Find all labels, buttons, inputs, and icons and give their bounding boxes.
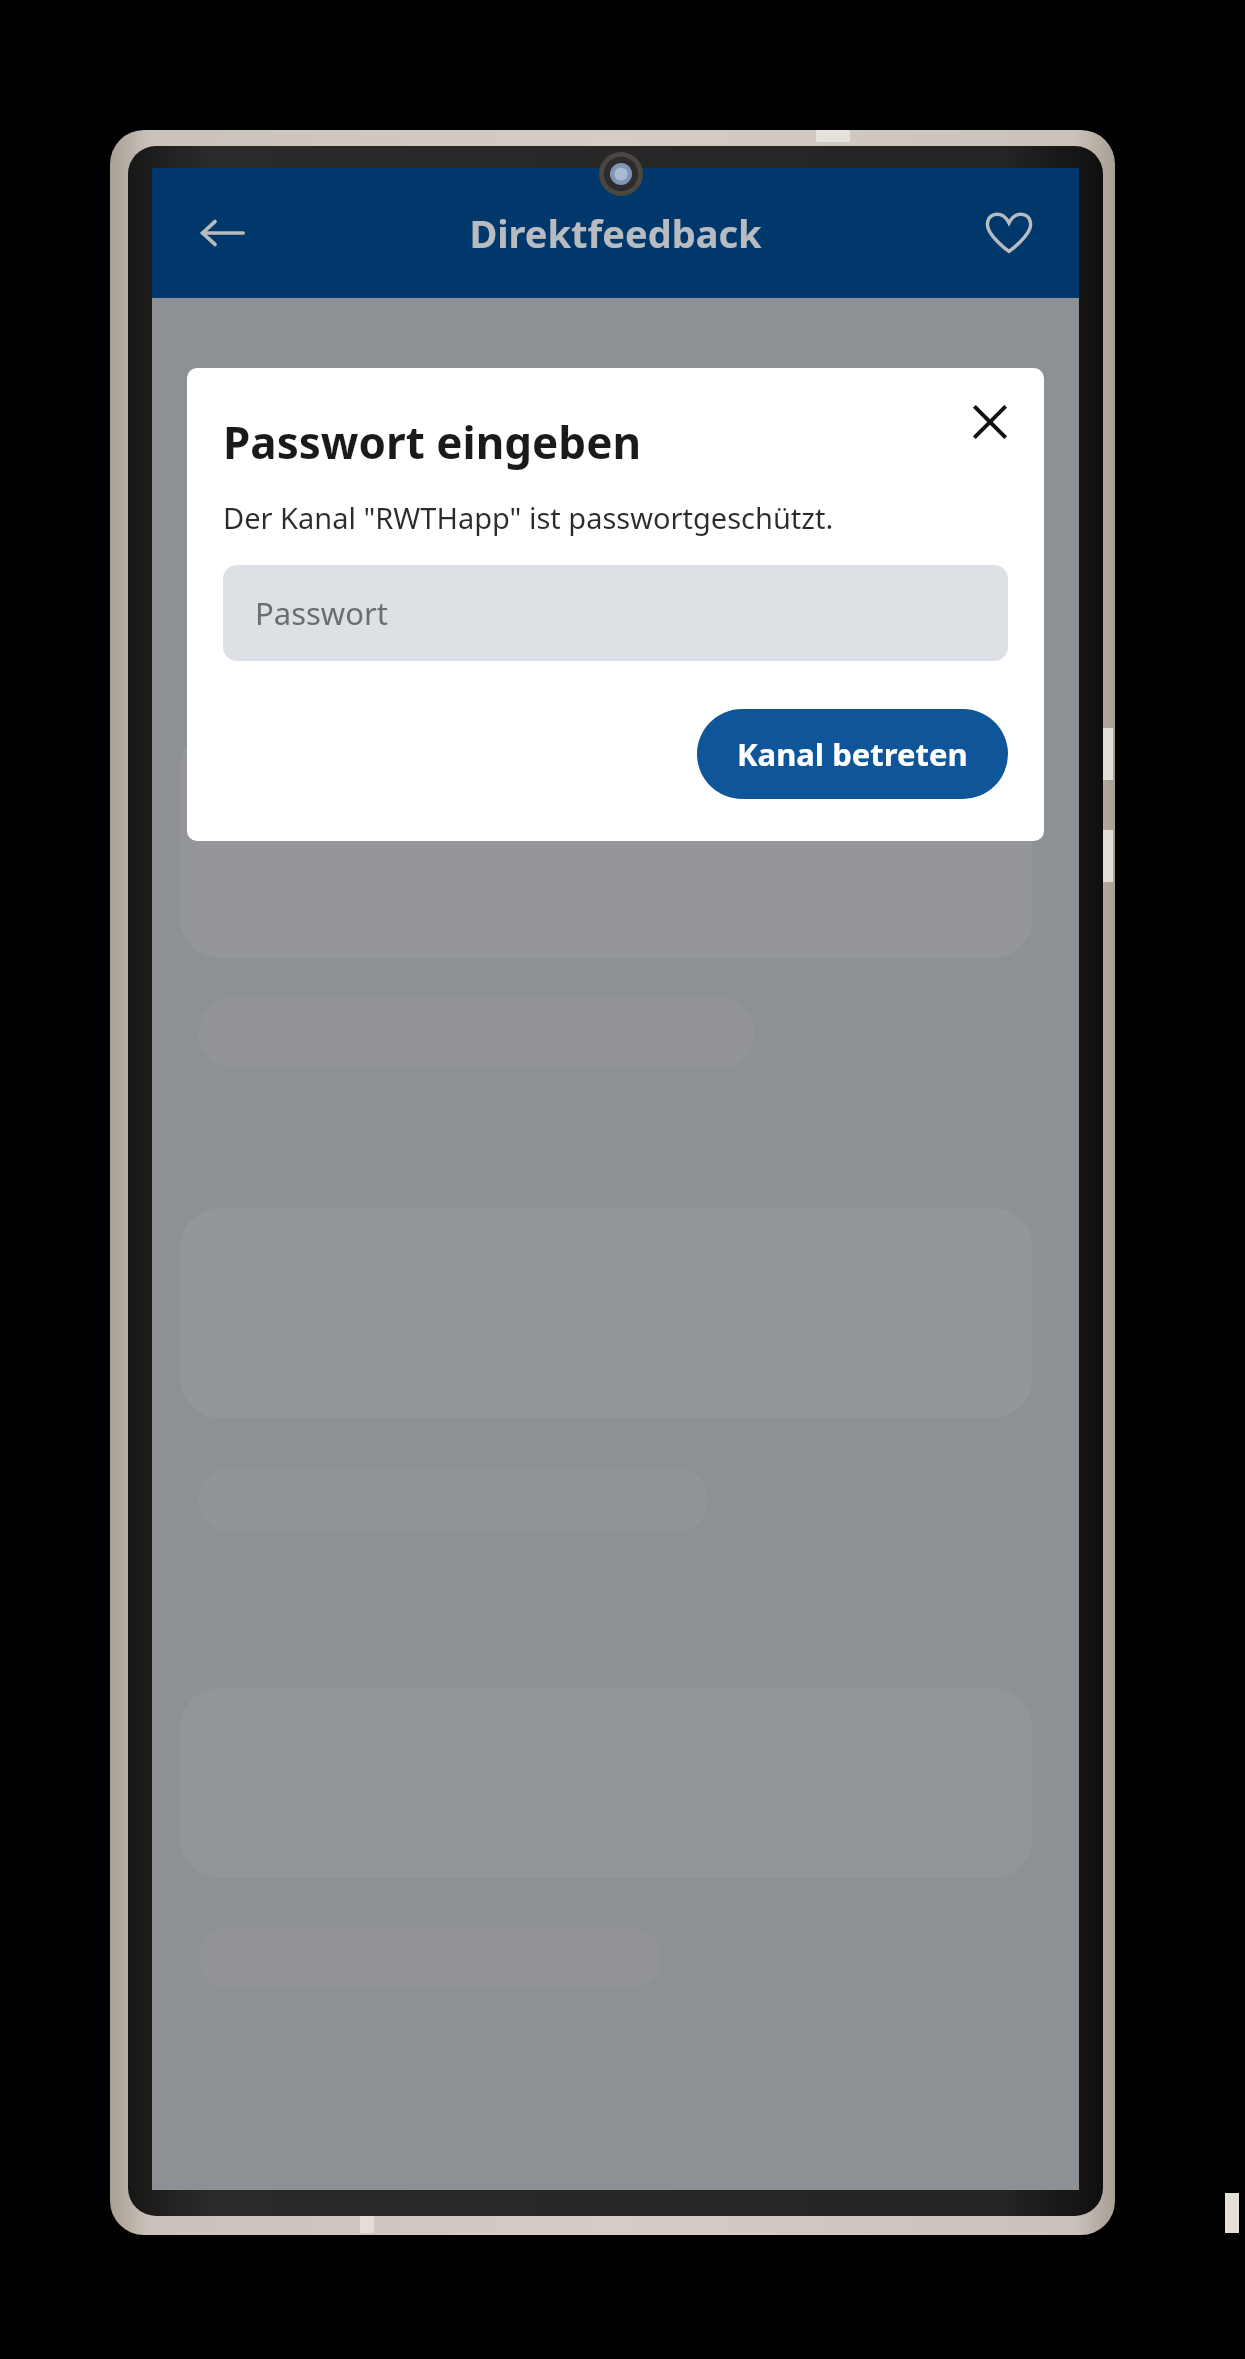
button[interactable]: Kanal betreten	[697, 709, 1008, 799]
staticText: Passwort eingeben	[223, 412, 641, 472]
staticText: Kanal betreten	[737, 733, 968, 775]
staticText: Passwort	[255, 592, 388, 634]
button[interactable]: Passwort	[223, 565, 1008, 661]
button[interactable]: Schließen	[954, 386, 1026, 458]
button[interactable]: Favorit	[973, 197, 1045, 269]
staticText: Direktfeedback	[469, 207, 762, 259]
button[interactable]: Zurück	[186, 197, 258, 269]
staticText: Der Kanal "RWTHapp" ist passwortgeschütz…	[223, 498, 834, 537]
